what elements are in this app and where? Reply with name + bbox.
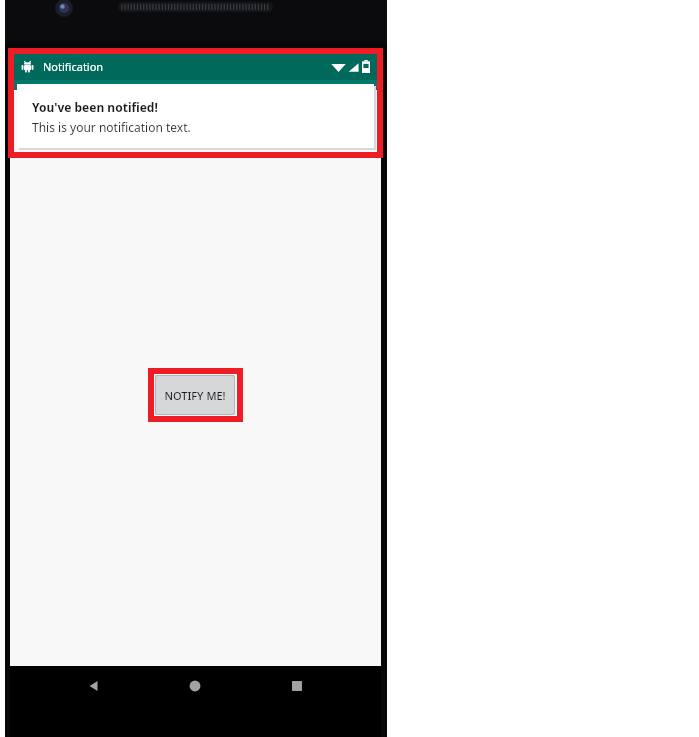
button[interactable]: Back — [78, 670, 110, 702]
staticText: Notification — [43, 59, 104, 74]
staticText: You've been notified! — [32, 99, 158, 115]
button[interactable]: Recent apps — [281, 670, 313, 702]
staticText: NOTIFY ME! — [164, 388, 226, 403]
button[interactable]: Home — [179, 670, 211, 702]
button[interactable]: NOTIFY ME! — [156, 376, 234, 414]
staticText: This is your notification text. — [32, 119, 191, 135]
button[interactable]: You've been notified! — [17, 84, 374, 148]
